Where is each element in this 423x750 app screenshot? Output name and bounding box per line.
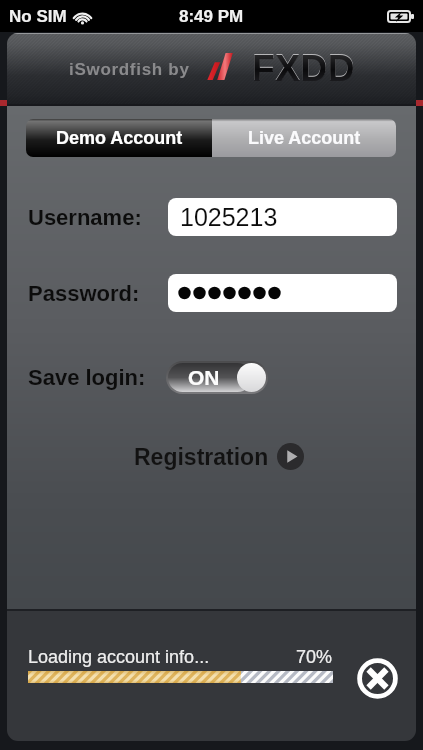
staticText: ON xyxy=(188,366,220,389)
staticText: FXDD xyxy=(252,48,356,89)
staticText: Live Account xyxy=(248,128,361,148)
staticText: 70% xyxy=(296,647,333,667)
staticText: 8:49 PM xyxy=(179,7,244,26)
staticText: iSwordfish by xyxy=(69,60,190,79)
staticText: 1025213 xyxy=(180,203,278,231)
staticText: Username: xyxy=(28,205,142,230)
button[interactable]: Demo Account xyxy=(26,119,212,157)
button[interactable]: 1025213 xyxy=(168,198,397,236)
staticText: Password: xyxy=(28,281,140,306)
button[interactable]: ON xyxy=(163,358,271,396)
button[interactable]: Live Account xyxy=(212,119,396,157)
staticText: Loading account info... xyxy=(28,647,210,667)
staticText: Demo Account xyxy=(56,128,183,148)
button[interactable] xyxy=(168,274,397,312)
staticText: Registration xyxy=(134,444,269,470)
staticText: FXDD xyxy=(252,47,356,88)
staticText: Save login: xyxy=(28,365,146,390)
staticText: No SIM xyxy=(9,7,67,26)
button[interactable]: Cancel xyxy=(352,653,402,703)
button[interactable]: Registration xyxy=(134,443,304,470)
